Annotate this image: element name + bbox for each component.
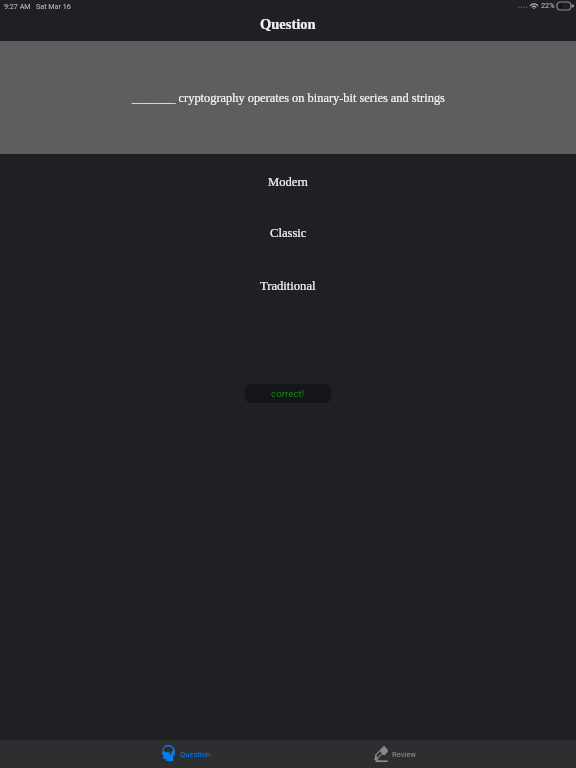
staticText: _______ cryptography operates on binary-… [132, 91, 445, 105]
button[interactable]: correct! [245, 384, 331, 403]
staticText: 22% [541, 1, 555, 10]
staticText: Modern [268, 175, 308, 189]
staticText: Classic [270, 226, 307, 240]
button[interactable]: Traditional [0, 275, 576, 297]
staticText: Sat Mar 16 [36, 2, 71, 10]
staticText: 9:27 AM [4, 2, 31, 10]
button[interactable]: Classic [0, 222, 576, 244]
staticText: Question [260, 16, 316, 32]
staticText: Traditional [260, 279, 316, 293]
button[interactable]: Modern [0, 171, 576, 193]
staticText: Question [180, 750, 211, 759]
button[interactable]: Review [374, 741, 416, 765]
staticText: correct! [271, 388, 305, 399]
button[interactable]: Question [161, 741, 211, 765]
staticText: Review [392, 750, 416, 759]
